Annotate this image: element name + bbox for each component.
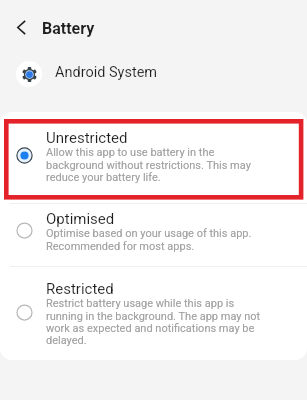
button[interactable]: Restricted — [0, 266, 307, 360]
button[interactable]: Optimised — [0, 203, 307, 267]
staticText: Optimised — [46, 210, 115, 228]
staticText: Allow this app to use battery in the bac… — [46, 146, 268, 183]
staticText: Unrestricted — [46, 129, 128, 147]
button[interactable]: Unrestricted — [0, 112, 307, 203]
staticText: Restricted — [46, 280, 114, 298]
staticText: Optimise based on your usage of this app… — [46, 227, 268, 252]
staticText: Battery — [42, 19, 95, 38]
staticText: Android System — [55, 64, 158, 81]
button[interactable]: Android System — [0, 47, 307, 103]
button[interactable]: Back — [9, 15, 36, 42]
staticText: Restrict battery usage while this app is… — [46, 297, 268, 346]
